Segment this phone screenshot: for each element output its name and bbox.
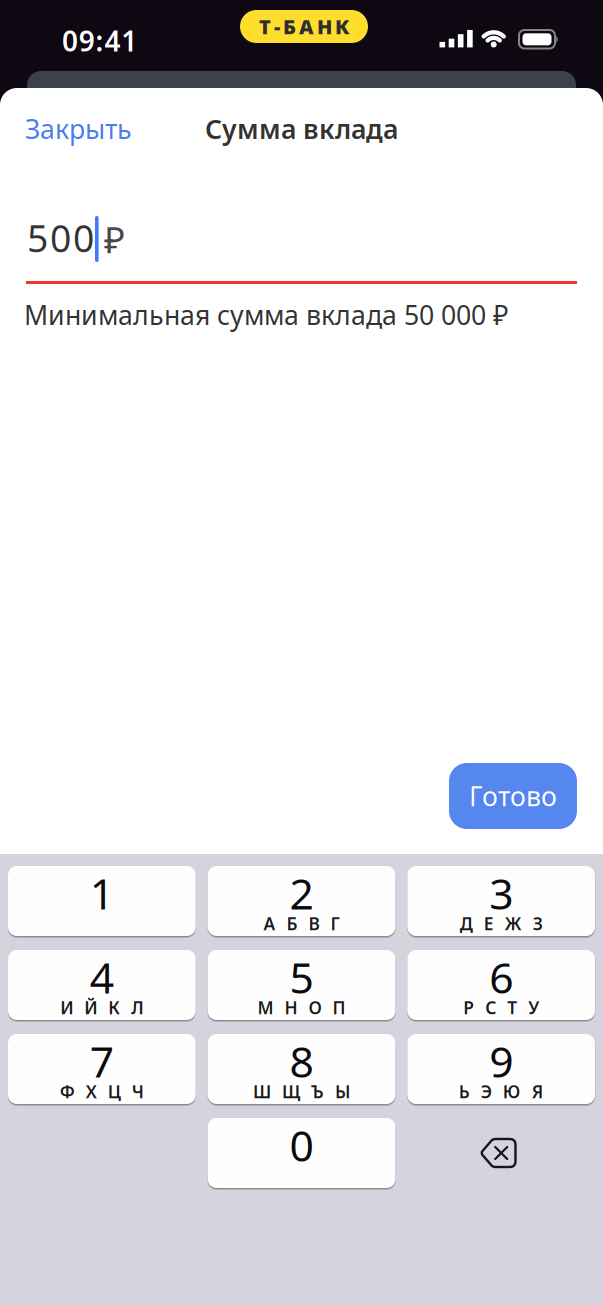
button[interactable]: Удалить (481, 1138, 517, 1168)
staticText: Р С Т У (463, 996, 539, 1019)
staticText: Ь Э Ю Я (459, 1080, 544, 1103)
staticText: 1 (90, 864, 114, 921)
staticText: Сумма вклада (205, 111, 398, 146)
button[interactable]: 1 (8, 866, 196, 936)
staticText: Д Е Ж З (460, 912, 543, 935)
staticText: 4 (90, 948, 114, 1005)
staticText: 500 (27, 213, 94, 263)
staticText: 2 (289, 864, 313, 921)
staticText: Т‑БАНК (259, 13, 349, 40)
button[interactable]: 9 (407, 1034, 595, 1104)
staticText: 7 (90, 1032, 114, 1089)
staticText: М Н О П (257, 996, 345, 1019)
button[interactable]: 5 (208, 950, 395, 1020)
button[interactable]: Т-Банк (240, 10, 368, 43)
button[interactable]: 0 (208, 1118, 395, 1188)
staticText: 09:41 (62, 22, 137, 59)
button[interactable]: 3 (407, 866, 595, 936)
staticText: 5 (289, 948, 313, 1005)
staticText: 9 (489, 1032, 513, 1089)
staticText: 0 (289, 1116, 313, 1173)
staticText: А Б В Г (263, 912, 339, 935)
staticText: Закрыть (25, 111, 132, 146)
staticText: И Й К Л (60, 996, 143, 1019)
button[interactable]: 6 (407, 950, 595, 1020)
staticText: 6 (489, 948, 513, 1005)
button[interactable]: Закрыть (25, 111, 132, 146)
staticText: 3 (489, 864, 513, 921)
button[interactable]: 8 (208, 1034, 395, 1104)
staticText: Готово (469, 778, 557, 814)
button[interactable]: 2 (208, 866, 395, 936)
button[interactable]: 4 (8, 950, 196, 1020)
button[interactable]: Готово (449, 763, 577, 829)
staticText: ₽ (104, 215, 125, 263)
button[interactable]: 7 (8, 1034, 196, 1104)
staticText: Ф Х Ц Ч (60, 1080, 144, 1103)
staticText: Ш Щ Ъ Ы (253, 1080, 350, 1103)
staticText: Минимальная сумма вклада 50 000 ₽ (24, 297, 509, 332)
staticText: 8 (289, 1032, 313, 1089)
